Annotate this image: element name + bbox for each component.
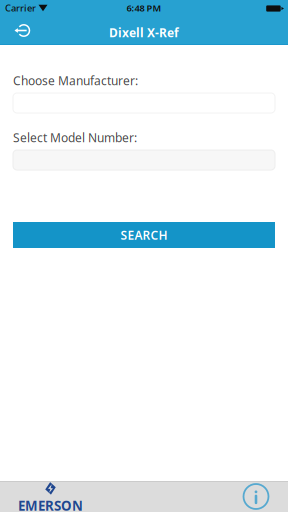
staticText: Dixell X-Ref [109, 24, 179, 40]
button[interactable]: SEARCH [13, 222, 275, 248]
staticText: Choose Manufacturer: [13, 72, 138, 88]
staticText: Carrier [5, 2, 36, 14]
staticText: Select Model Number: [13, 129, 137, 145]
staticText: EMERSON [18, 497, 83, 512]
button[interactable]: Sign out [0, 20, 38, 44]
staticText: SEARCH [120, 227, 167, 243]
button[interactable]: Info [237, 481, 275, 512]
staticText: 6:48 PM [126, 2, 161, 14]
